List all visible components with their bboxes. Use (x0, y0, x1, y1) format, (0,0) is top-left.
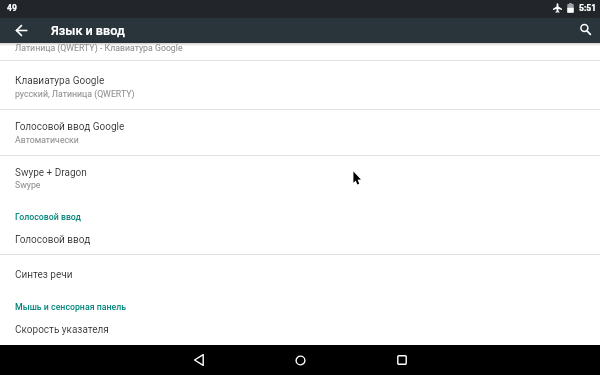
button[interactable] (183, 345, 215, 375)
button[interactable]: Голосовой ввод (0, 224, 600, 254)
button[interactable] (284, 345, 316, 375)
button[interactable] (8, 18, 34, 42)
staticText: Swype (15, 180, 41, 190)
button[interactable]: Синтез речи (0, 255, 600, 297)
staticText: Латиница (QWERTY) - Клавиатура Google (15, 43, 183, 53)
button[interactable] (386, 345, 418, 375)
staticText: Swype + Dragon (15, 167, 87, 179)
staticText: Голосовой ввод (15, 234, 91, 246)
staticText: Скорость указателя (15, 324, 109, 336)
staticText: Мышь и сенсорная панель (15, 302, 127, 312)
staticText: 5:51 (579, 3, 597, 13)
button[interactable]: Скорость указателя (0, 314, 600, 349)
staticText: Язык и ввод (51, 23, 125, 38)
staticText: Клавиатура Google (15, 75, 105, 87)
staticText: русский, Латиница (QWERTY) (15, 89, 135, 99)
staticText: 49 (7, 3, 17, 13)
staticText: Автоматически (15, 135, 79, 145)
staticText: Синтез речи (15, 269, 73, 281)
button[interactable] (572, 18, 600, 42)
button[interactable]: Клавиатура Google (0, 61, 600, 109)
staticText: Голосовой ввод Google (15, 121, 125, 133)
button[interactable]: Голосовой ввод Google (0, 109, 600, 155)
button[interactable]: Латиница (QWERTY) - Клавиатура Google (0, 43, 600, 60)
button[interactable]: Swype + Dragon (0, 156, 600, 203)
staticText: Голосовой ввод (15, 212, 81, 222)
